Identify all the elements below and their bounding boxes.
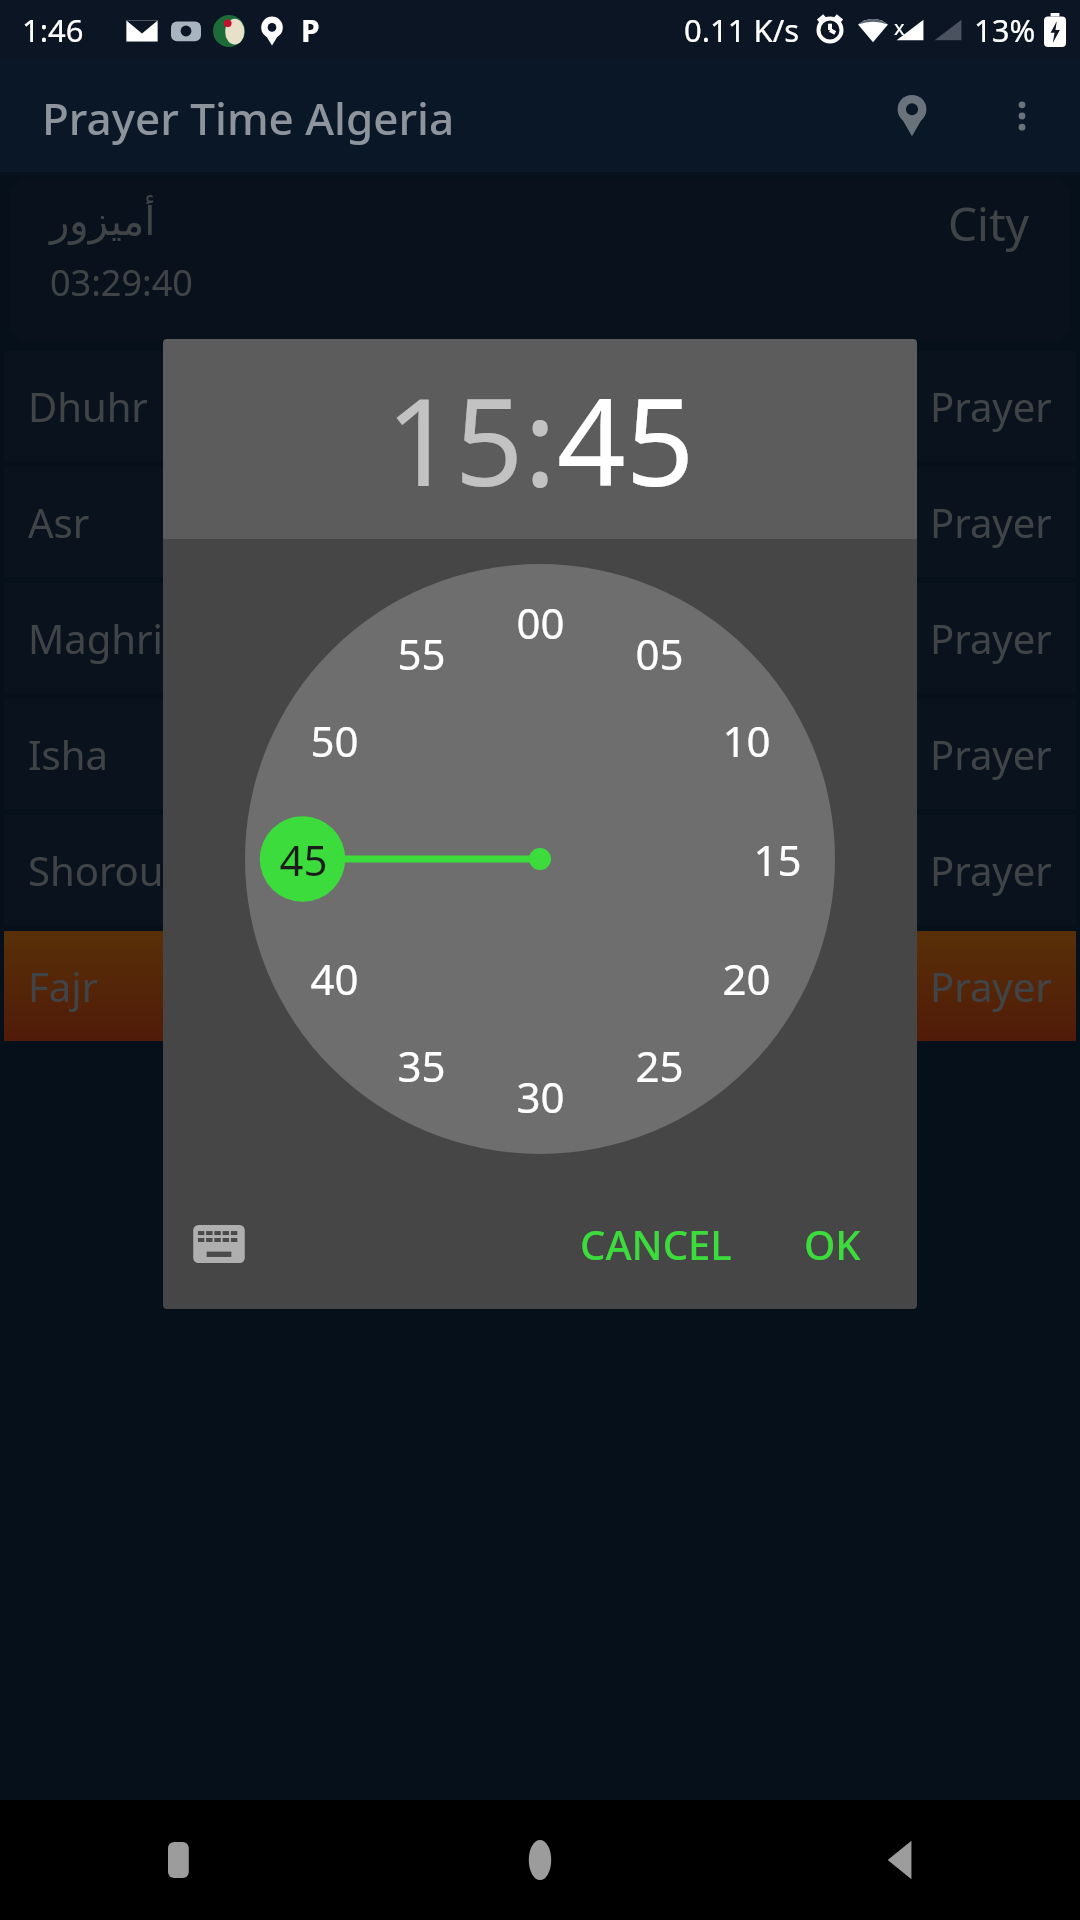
- button[interactable]: 45: [279, 831, 328, 888]
- button[interactable]: Fajr: [4, 931, 1076, 1041]
- button[interactable]: 00: [516, 594, 565, 651]
- button[interactable]: 15: [386, 358, 524, 521]
- staticText: Shorouq: [28, 843, 189, 897]
- staticText: أميزور: [50, 198, 156, 245]
- staticText: Prayer: [930, 611, 1052, 665]
- button[interactable]: Asr: [4, 467, 1076, 577]
- button[interactable]: Recent apps: [0, 1800, 360, 1920]
- button[interactable]: OK: [786, 1203, 879, 1285]
- button[interactable]: Back: [720, 1800, 1080, 1920]
- button[interactable]: Dhuhr: [4, 351, 1076, 461]
- staticText: x: [894, 14, 905, 41]
- staticText: Prayer Time Algeria: [42, 88, 455, 148]
- button[interactable]: Shorouq: [4, 815, 1076, 925]
- staticText: Fajr: [28, 959, 99, 1013]
- button[interactable]: 35: [397, 1037, 446, 1094]
- staticText: Prayer: [930, 495, 1052, 549]
- staticText: OK: [804, 1217, 861, 1271]
- staticText: CANCEL: [580, 1217, 732, 1271]
- button[interactable]: Isha: [4, 699, 1076, 809]
- staticText: Prayer: [930, 727, 1052, 781]
- staticText: Prayer: [930, 379, 1052, 433]
- button[interactable]: 15: [753, 831, 802, 888]
- button[interactable]: Maghrib: [4, 583, 1076, 693]
- button[interactable]: Location: [884, 88, 940, 144]
- staticText: Asr: [28, 495, 90, 549]
- button[interactable]: 10: [722, 712, 771, 769]
- staticText: 03:29:40: [50, 258, 193, 307]
- staticText: Maghrib: [28, 611, 188, 665]
- staticText: 1:46: [22, 9, 84, 51]
- button[interactable]: 55: [397, 625, 446, 682]
- button[interactable]: 20: [722, 950, 771, 1007]
- staticText: Prayer: [930, 959, 1052, 1013]
- staticText: Isha: [28, 727, 108, 781]
- button[interactable]: 05: [635, 625, 684, 682]
- staticText: P: [301, 10, 320, 51]
- button[interactable]: 25: [635, 1037, 684, 1094]
- button[interactable]: More options: [994, 88, 1050, 144]
- button[interactable]: 30: [516, 1068, 565, 1125]
- staticText: :: [524, 358, 557, 521]
- button[interactable]: 50: [310, 712, 359, 769]
- button[interactable]: 45: [557, 358, 695, 521]
- staticText: Dhuhr: [28, 379, 148, 433]
- button[interactable]: 40: [310, 950, 359, 1007]
- button[interactable]: Switch to keyboard input: [187, 1212, 251, 1276]
- staticText: 0.11 K/s: [684, 9, 800, 51]
- button[interactable]: Home: [360, 1800, 720, 1920]
- button[interactable]: CANCEL: [562, 1203, 750, 1285]
- staticText: Prayer: [930, 843, 1052, 897]
- staticText: 13%: [974, 9, 1036, 51]
- staticText: City: [948, 192, 1030, 255]
